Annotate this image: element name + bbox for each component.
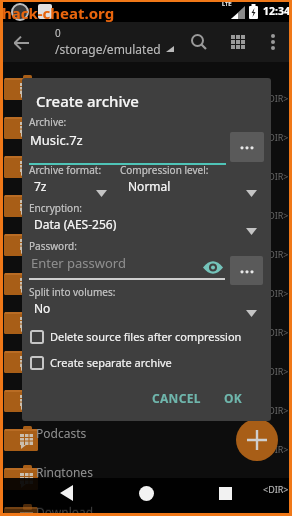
staticText: CANCEL	[152, 390, 201, 406]
staticText: Password:	[29, 239, 77, 253]
staticText: No	[34, 300, 51, 316]
button[interactable]: Data (AES-256)	[34, 216, 184, 232]
staticText: Delete source files after compression	[50, 329, 242, 344]
staticText: LTE	[222, 0, 232, 8]
button[interactable]	[211, 479, 239, 507]
button[interactable]	[132, 479, 160, 507]
staticText: Normal	[128, 178, 171, 194]
staticText: Compression level:	[120, 163, 209, 177]
staticText: hack-cheat.org	[2, 3, 115, 23]
staticText: <DIR>	[263, 404, 289, 416]
staticText: 0	[55, 26, 61, 39]
button[interactable]: 7z	[34, 178, 114, 194]
button[interactable]: OK	[218, 385, 248, 411]
staticText: Encryption:	[29, 201, 83, 215]
staticText: <DIR>	[263, 483, 289, 495]
staticText: <DIR>	[263, 92, 289, 104]
button[interactable]	[236, 419, 278, 461]
button[interactable]	[225, 29, 251, 55]
staticText: <DIR>	[263, 365, 289, 377]
button[interactable]	[8, 30, 34, 56]
button[interactable]	[230, 256, 263, 285]
staticText: 12:34	[263, 4, 290, 18]
button[interactable]: Delete source files after compression	[30, 328, 262, 344]
button[interactable]: No	[34, 300, 134, 316]
staticText: Download	[36, 504, 94, 516]
staticText: Create archive	[36, 91, 139, 111]
staticText: Create separate archive	[50, 355, 172, 370]
staticText: 7z	[34, 178, 47, 194]
button[interactable]	[186, 29, 212, 55]
staticText: <DIR>	[263, 131, 289, 143]
staticText: Enter password	[31, 254, 126, 272]
staticText: <DIR>	[263, 209, 289, 221]
button[interactable]: Create separate archive	[30, 354, 262, 370]
staticText: <DIR>	[263, 326, 289, 338]
button[interactable]: /storage/emulated	[55, 41, 174, 57]
button[interactable]	[230, 132, 264, 162]
button[interactable]	[260, 29, 286, 55]
staticText: /storage/emulated	[55, 41, 161, 57]
staticText: Download	[36, 503, 94, 516]
staticText: <DIR>	[263, 287, 289, 299]
staticText: <DIR>	[263, 443, 289, 455]
button[interactable]: CANCEL	[148, 385, 204, 411]
staticText: <DIR>	[263, 170, 289, 182]
staticText: Podcasts	[36, 425, 87, 441]
staticText: Split into volumes:	[29, 285, 116, 299]
staticText: <DIR>	[263, 482, 289, 494]
staticText: Ringtones	[36, 464, 93, 480]
staticText: Archive format:	[29, 163, 102, 177]
staticText: Data (AES-256)	[34, 216, 117, 232]
button[interactable]: Normal	[128, 178, 248, 194]
button[interactable]	[52, 479, 80, 507]
staticText: OK	[224, 390, 243, 406]
staticText: <DIR>	[263, 248, 289, 260]
staticText: Music.7z	[30, 131, 83, 149]
staticText: Archive:	[29, 115, 67, 129]
